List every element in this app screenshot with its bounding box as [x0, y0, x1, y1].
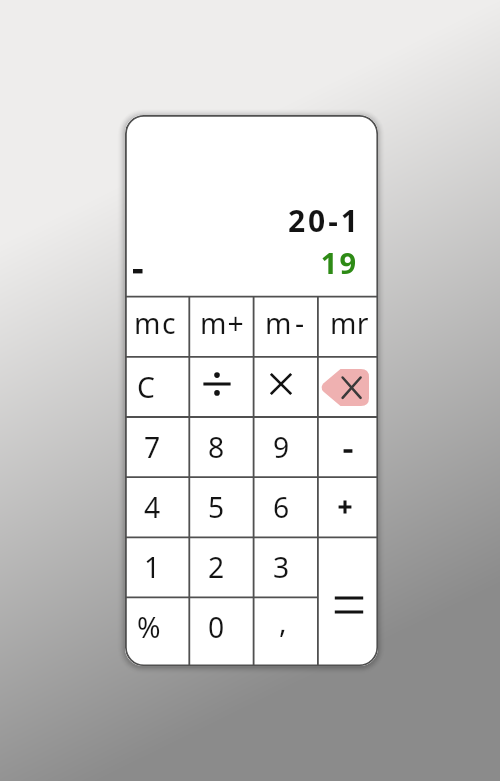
staticText: 0: [208, 608, 225, 647]
button[interactable]: mr: [318, 297, 378, 357]
staticText: m-: [265, 304, 308, 343]
button[interactable]: mc: [125, 297, 189, 357]
button[interactable]: %: [125, 597, 189, 657]
button[interactable]: Multiply: [254, 357, 318, 417]
button[interactable]: 1: [125, 537, 189, 597]
button[interactable]: 0: [189, 597, 253, 657]
staticText: 7: [144, 428, 161, 467]
button[interactable]: Divide: [189, 357, 253, 417]
button[interactable]: 7: [125, 417, 189, 477]
button[interactable]: 9: [254, 417, 318, 477]
staticText: 3: [273, 548, 290, 587]
button[interactable]: m+: [189, 297, 253, 357]
button[interactable]: ,: [254, 597, 318, 657]
button[interactable]: C: [125, 357, 189, 417]
staticText: 4: [144, 488, 161, 527]
button[interactable]: 3: [254, 537, 318, 597]
staticText: 5: [208, 488, 225, 527]
button[interactable]: Backspace: [318, 357, 378, 417]
staticText: 6: [273, 488, 290, 527]
staticText: C: [137, 368, 155, 407]
staticText: m+: [200, 304, 245, 343]
button[interactable]: 8: [189, 417, 253, 477]
staticText: 19: [125, 243, 358, 282]
button[interactable]: 2: [189, 537, 253, 597]
staticText: 2: [208, 548, 225, 587]
staticText: 20-1: [125, 200, 361, 241]
staticText: 9: [273, 428, 290, 467]
button[interactable]: Plus: [318, 477, 378, 537]
button[interactable]: m-: [254, 297, 318, 357]
button[interactable]: 6: [254, 477, 318, 537]
button[interactable]: 4: [125, 477, 189, 537]
button[interactable]: 5: [189, 477, 253, 537]
staticText: mc: [134, 304, 178, 343]
staticText: %: [137, 608, 161, 647]
button[interactable]: Minus: [318, 417, 378, 477]
staticText: ,: [279, 603, 287, 642]
staticText: 1: [144, 548, 161, 587]
staticText: 8: [208, 428, 225, 467]
button[interactable]: Equals: [318, 537, 378, 666]
staticText: mr: [330, 304, 369, 343]
